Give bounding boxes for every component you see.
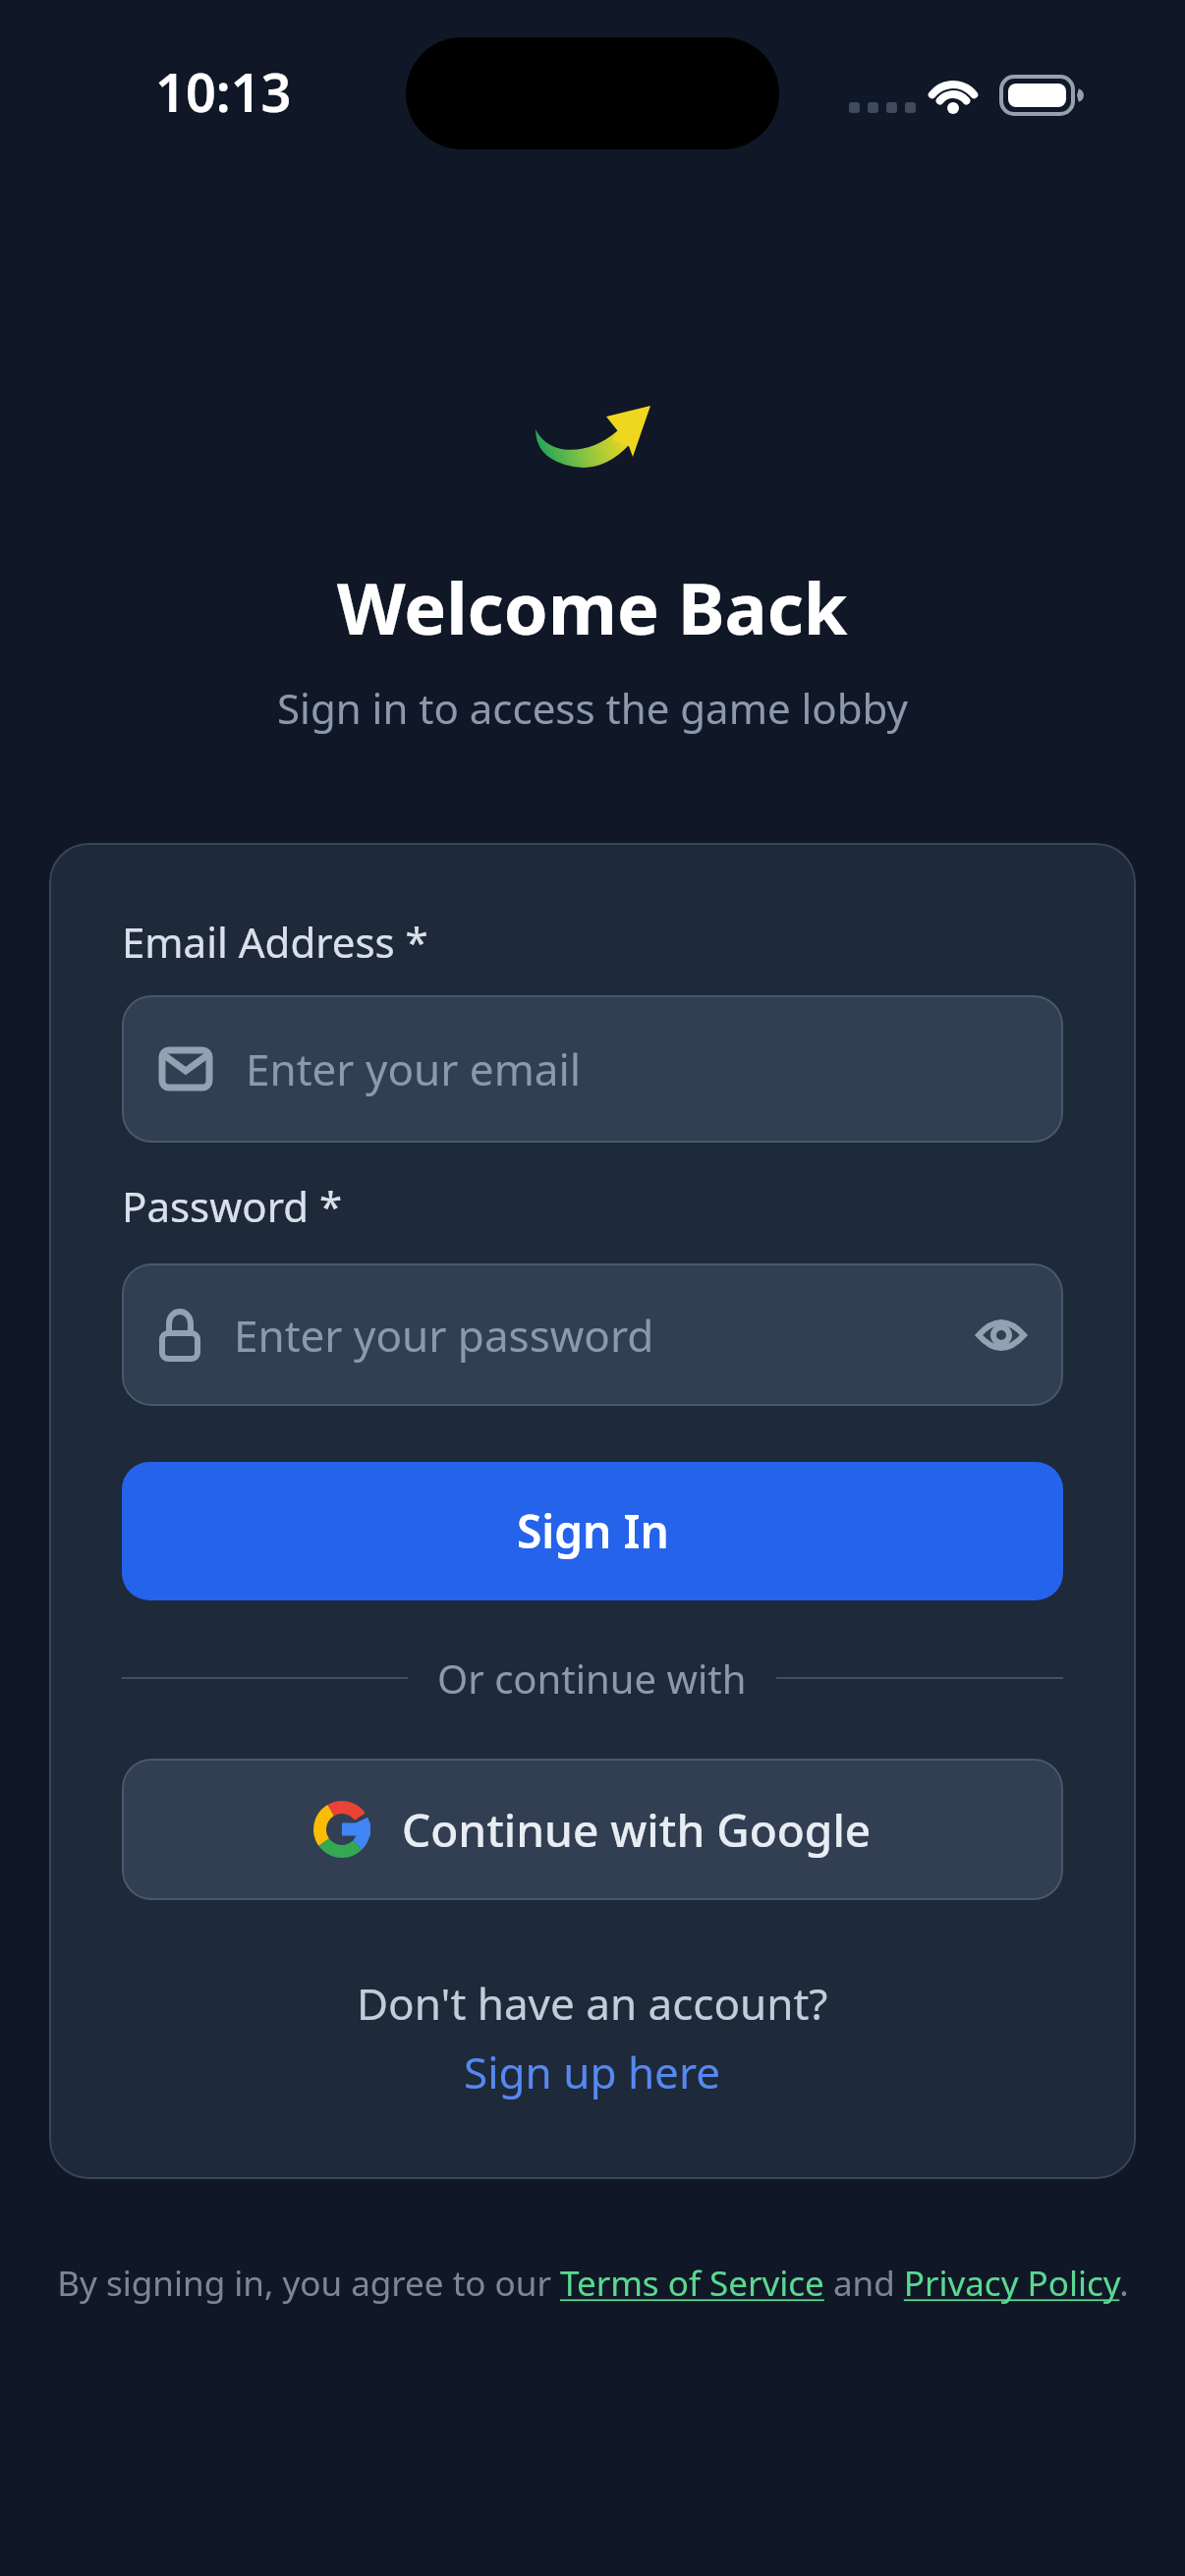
button[interactable] (977, 1316, 1026, 1355)
staticText: Or continue with (437, 1652, 747, 1705)
button[interactable]: Sign In (122, 1462, 1063, 1600)
staticText: Don't have an account? (357, 1974, 828, 2033)
staticText: By signing in, you agree to our Terms of… (57, 2260, 1129, 2307)
staticText: Sign in to access the game lobby (277, 680, 909, 736)
button[interactable]: Enter your email (122, 995, 1063, 1143)
staticText: Continue with Google (402, 1799, 872, 1861)
button[interactable]: Sign up here (464, 2043, 721, 2101)
staticText: 10:13 (155, 55, 292, 128)
staticText: Enter your email (246, 1039, 582, 1098)
button[interactable]: Enter your password (122, 1263, 1063, 1406)
button[interactable]: Continue with Google (122, 1759, 1063, 1900)
staticText: Email Address * (122, 914, 428, 970)
staticText: Welcome Back (337, 559, 848, 655)
staticText: Password * (122, 1178, 343, 1234)
staticText: Sign up here (464, 2043, 721, 2101)
staticText: Enter your password (234, 1306, 654, 1365)
staticText: Sign In (517, 1500, 669, 1562)
